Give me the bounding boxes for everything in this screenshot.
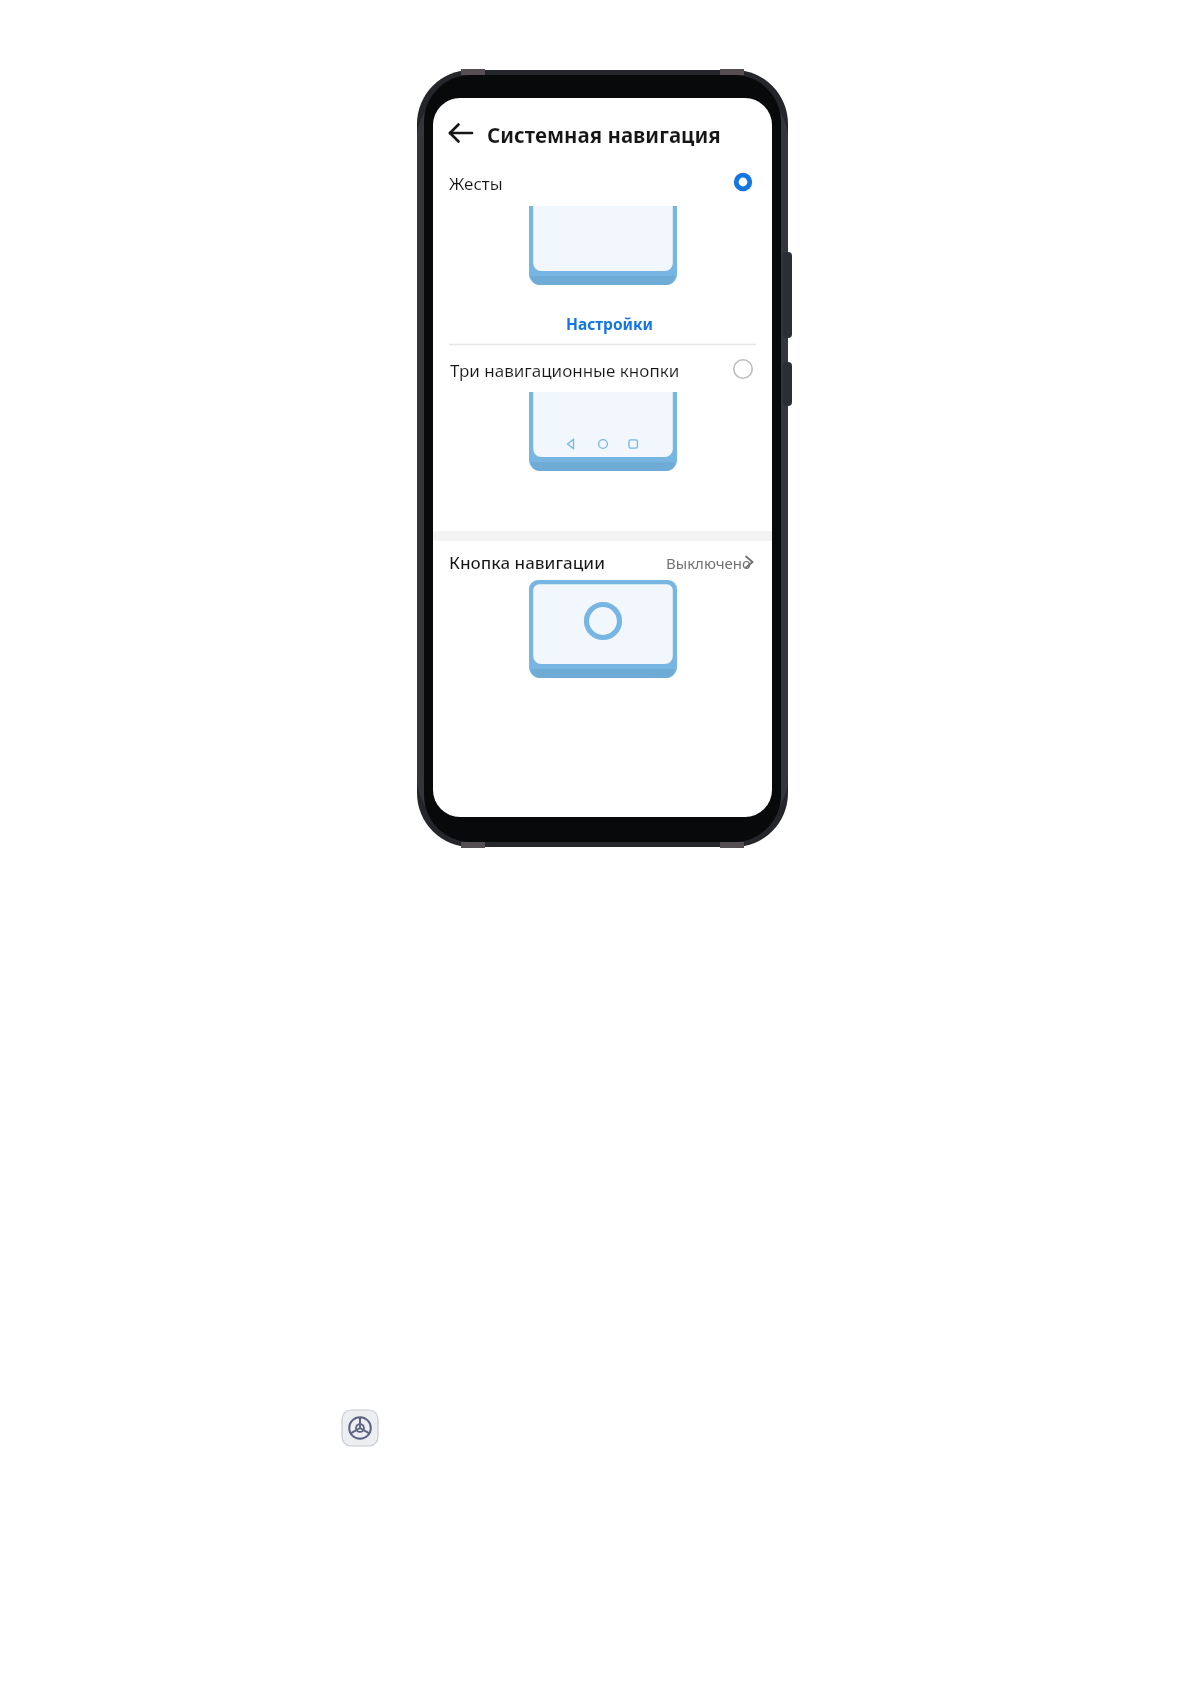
button[interactable]	[449, 353, 756, 385]
staticText: Жесты	[449, 172, 503, 195]
button[interactable]	[449, 545, 756, 579]
button[interactable]	[449, 166, 756, 198]
staticText: Настройки	[566, 313, 654, 334]
button[interactable]	[555, 308, 651, 338]
staticText: Системная навигация	[487, 121, 721, 149]
button[interactable]: Back	[449, 112, 749, 154]
staticText: Три навигационные кнопки	[450, 359, 680, 382]
staticText: Кнопка навигации	[449, 551, 605, 574]
button[interactable]: Settings app icon	[342, 1410, 378, 1446]
staticText: Выключено	[666, 553, 751, 573]
